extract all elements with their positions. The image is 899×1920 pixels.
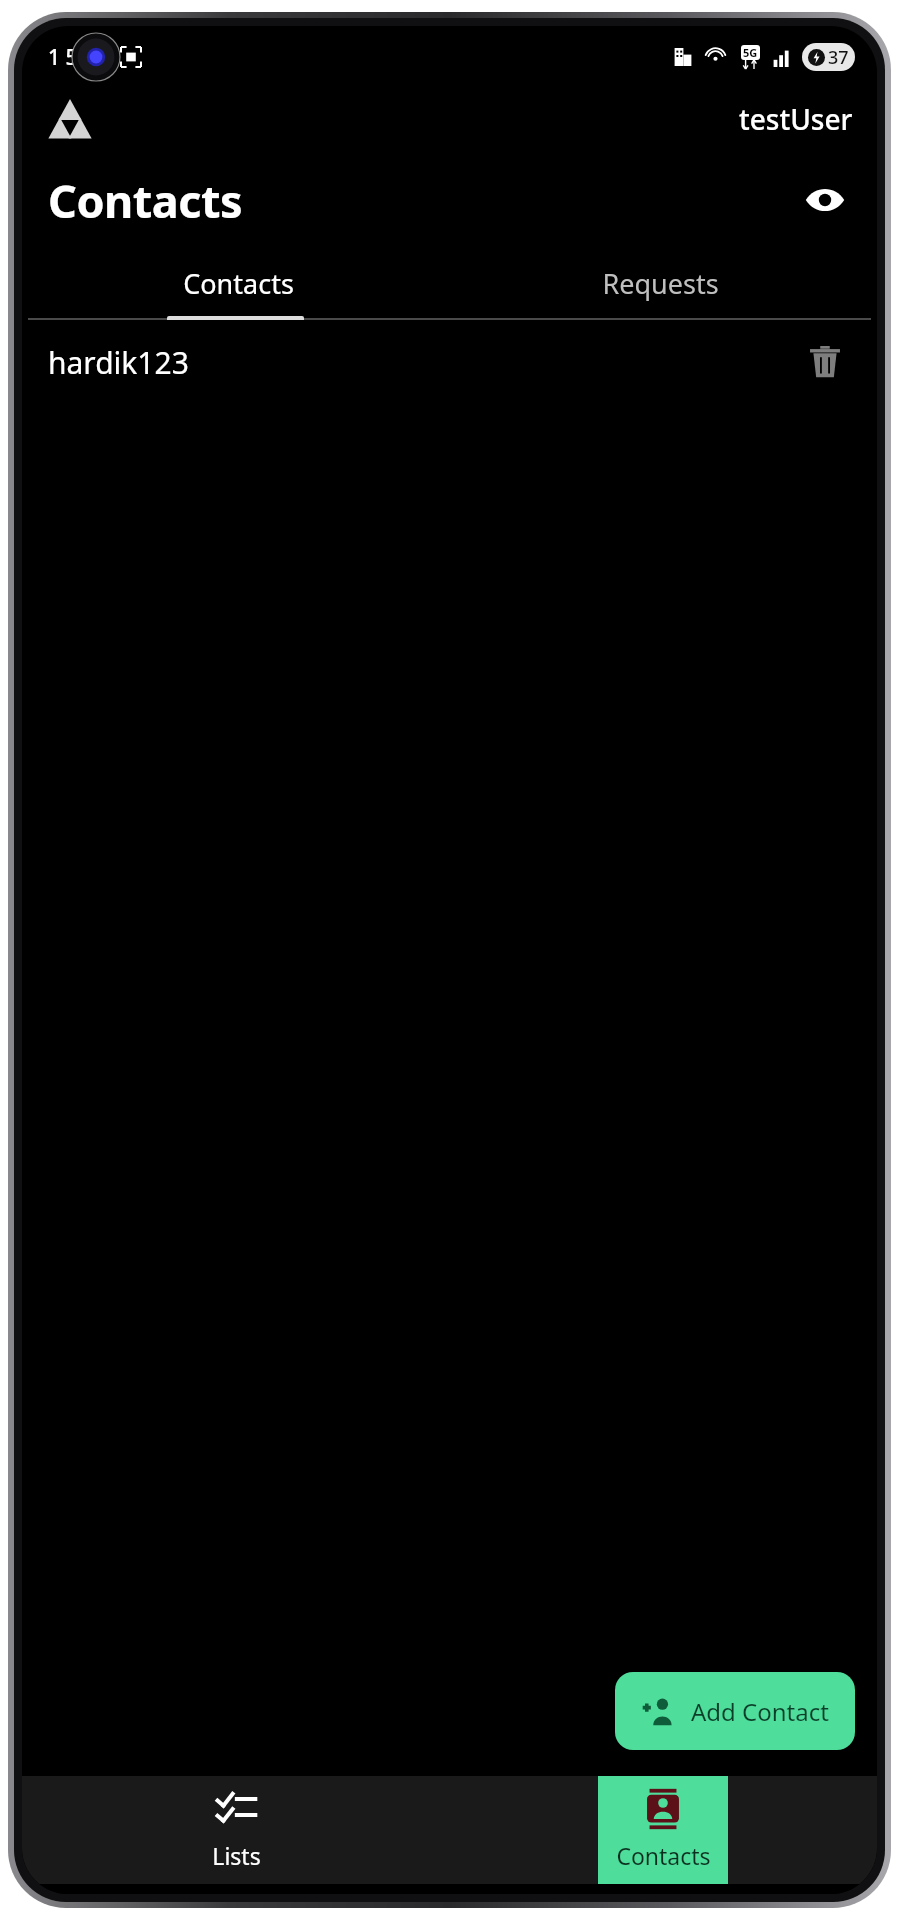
staticText: 1 5 [48, 43, 78, 72]
button[interactable]: testUser [739, 100, 853, 138]
staticText: Lists [212, 1840, 261, 1871]
staticText: 5G [743, 45, 758, 60]
staticText: Contacts [616, 1840, 711, 1871]
staticText: 0 [97, 42, 105, 60]
staticText: Contacts [183, 265, 294, 302]
button[interactable]: Contacts [28, 250, 449, 316]
staticText: Requests [602, 265, 719, 302]
staticText: 37 [828, 45, 849, 70]
button[interactable]: App logo [46, 95, 94, 143]
button[interactable]: Add Contact [615, 1672, 855, 1750]
button[interactable]: Requests [449, 250, 871, 316]
button[interactable]: Toggle visibility [799, 174, 851, 226]
button[interactable]: Contacts [598, 1776, 728, 1884]
button[interactable]: hardik123 [22, 320, 877, 404]
staticText: Add Contact [691, 1695, 829, 1728]
staticText: Contacts [48, 170, 243, 231]
button[interactable]: Delete contact [799, 336, 851, 388]
button[interactable]: Lists [171, 1776, 301, 1884]
staticText: hardik123 [48, 342, 189, 383]
staticText: KB/s [90, 60, 111, 72]
